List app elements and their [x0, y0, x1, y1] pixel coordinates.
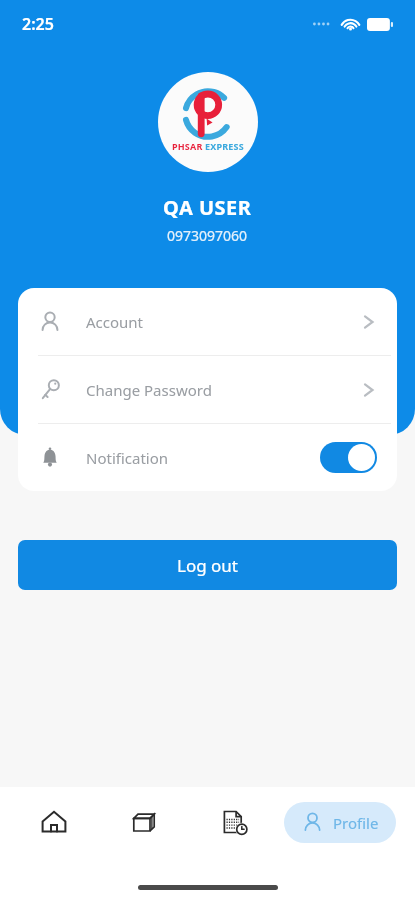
staticText: QA USER — [163, 194, 252, 221]
button[interactable]: Log out — [18, 540, 397, 590]
staticText: 0973097060 — [167, 226, 248, 245]
button[interactable]: Account — [18, 288, 397, 355]
staticText: PHSAR — [172, 140, 203, 152]
staticText: Notification — [86, 448, 320, 468]
button[interactable]: Packages — [99, 787, 189, 857]
staticText: 2:25 — [22, 13, 54, 35]
button[interactable]: Profile — [284, 802, 396, 843]
staticText: Profile — [333, 813, 379, 833]
button[interactable]: Notification — [18, 424, 397, 491]
staticText: EXPRESS — [205, 140, 244, 152]
button[interactable]: History — [189, 787, 279, 857]
button[interactable]: Change Password — [18, 356, 397, 423]
button[interactable]: Home — [8, 787, 99, 857]
staticText: Change Password — [86, 380, 361, 400]
button[interactable]: Notification toggle, on — [320, 442, 377, 473]
staticText: Log out — [177, 554, 238, 577]
staticText: Account — [86, 312, 361, 332]
